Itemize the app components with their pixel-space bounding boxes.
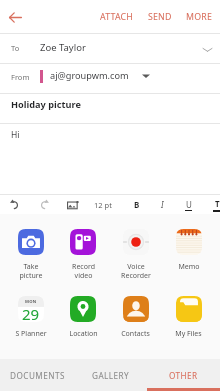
staticText: Take picture [19, 262, 43, 280]
staticText: Hi [11, 129, 20, 141]
staticText: Zoe Taylor [40, 41, 86, 54]
staticText: 29 [22, 304, 40, 322]
button[interactable]: GALLERY [74, 359, 147, 391]
button[interactable]: Record video [57, 229, 109, 280]
button[interactable]: SEND [141, 5, 179, 29]
staticText: I [161, 199, 164, 210]
button[interactable]: Back [0, 2, 30, 32]
staticText: MORE [186, 11, 213, 23]
button[interactable]: I [153, 195, 171, 214]
button[interactable]: MON [5, 296, 57, 339]
button[interactable]: 12 pt [90, 195, 116, 214]
staticText: My Files [175, 329, 202, 339]
button[interactable]: MORE [179, 5, 220, 29]
button[interactable]: My Files [162, 296, 215, 339]
staticText: To [11, 43, 20, 53]
button[interactable]: B [128, 195, 146, 214]
button[interactable]: U [179, 195, 197, 214]
staticText: B [134, 199, 140, 210]
staticText: OTHER [169, 370, 198, 381]
staticText: Voice Recorder [121, 262, 151, 280]
button[interactable]: Location [57, 296, 109, 339]
button[interactable]: OTHER [147, 359, 220, 391]
staticText: From [11, 72, 30, 82]
staticText: U [186, 199, 192, 210]
button[interactable]: Voice Recorder [109, 229, 162, 280]
staticText: Contacts [121, 329, 150, 339]
staticText: MON [25, 299, 37, 305]
button[interactable]: Undo [4, 195, 24, 214]
staticText: Memo [178, 262, 200, 272]
button[interactable]: To [0, 34, 220, 63]
button[interactable]: Holiday picture [0, 94, 220, 123]
button[interactable]: Hi [0, 124, 220, 194]
button[interactable]: Take picture [5, 229, 57, 280]
button[interactable]: Redo [34, 195, 54, 214]
button[interactable]: DOCUMENTS [0, 359, 74, 391]
button[interactable]: Expand recipients [199, 41, 215, 57]
button[interactable]: Memo [162, 229, 215, 272]
staticText: T [215, 198, 220, 209]
staticText: GALLERY [92, 370, 130, 381]
staticText: SEND [148, 11, 172, 23]
button[interactable]: Insert image [62, 195, 84, 214]
button[interactable]: ATTACH [93, 5, 141, 29]
staticText: DOCUMENTS [10, 370, 65, 381]
button[interactable]: Contacts [109, 296, 162, 339]
button[interactable]: Choose sender [139, 69, 153, 83]
button[interactable]: From [0, 64, 220, 93]
staticText: 12 pt [94, 200, 112, 210]
staticText: Location [69, 329, 98, 339]
staticText: S Planner [15, 329, 47, 339]
staticText: Record video [72, 262, 95, 280]
button[interactable]: T [208, 195, 220, 214]
staticText: ATTACH [100, 11, 134, 23]
staticText: aj@groupwm.com [50, 69, 129, 82]
staticText: Holiday picture [11, 98, 81, 111]
